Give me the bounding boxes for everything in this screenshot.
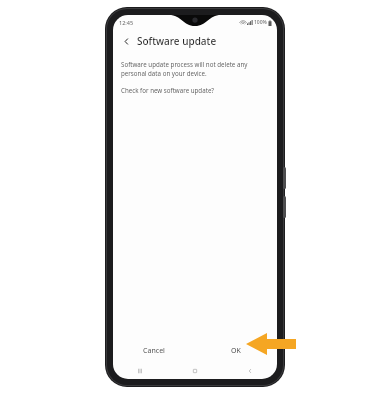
button[interactable]: Cancel [113, 339, 195, 363]
staticText: 12:45 [119, 19, 134, 26]
staticText: Check for new software update? [121, 86, 215, 94]
staticText: 100% [254, 19, 267, 26]
staticText: Software update process will not delete … [121, 60, 269, 78]
staticText: OK [231, 346, 241, 356]
staticText: Software update [137, 34, 217, 48]
other: Pointer highlighting OK [246, 333, 296, 355]
button[interactable]: Recent apps [113, 363, 167, 379]
staticText: Cancel [143, 346, 165, 356]
button[interactable]: Home [167, 363, 222, 379]
button[interactable]: Navigate up [119, 34, 133, 48]
button[interactable]: Back [222, 363, 277, 379]
button[interactable]: OK [195, 339, 277, 363]
